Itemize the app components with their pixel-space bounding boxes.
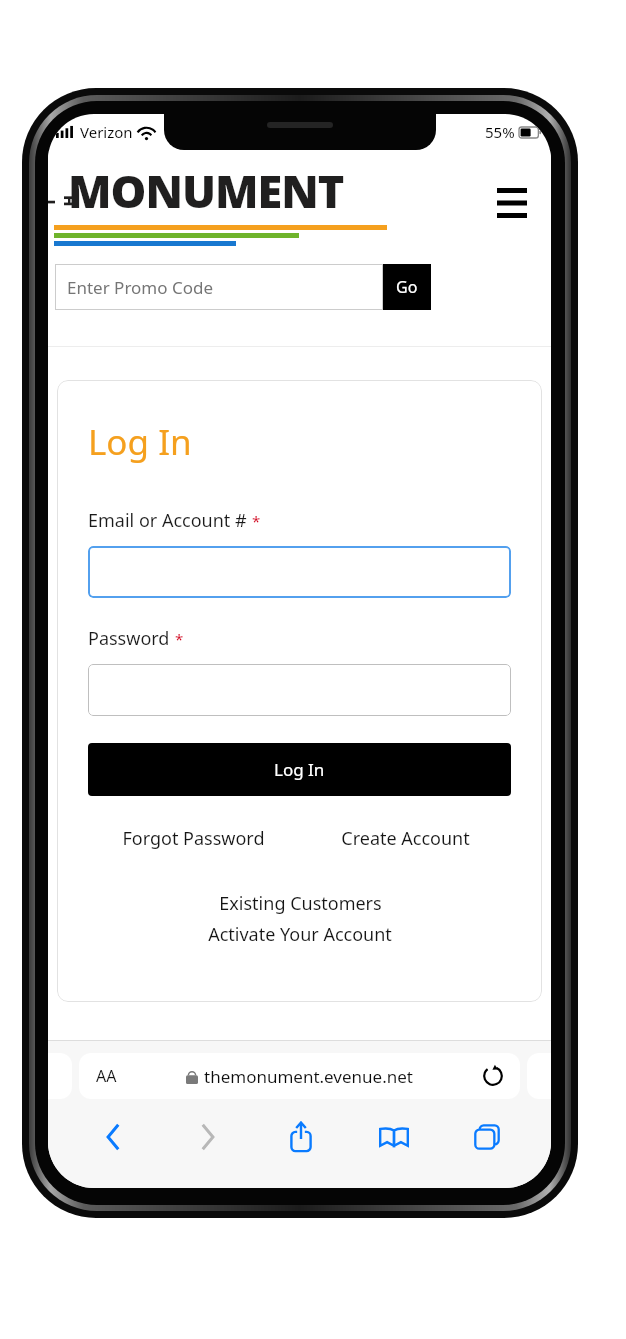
staticText: Existing Customers [219,891,382,916]
button[interactable]: Tabs [440,1110,533,1164]
staticText: Activate Your Account [208,922,392,947]
staticText: Log In [274,758,325,781]
staticText: Verizon [80,122,133,142]
staticText: Log In [88,418,192,466]
staticText: * [175,629,184,649]
button[interactable]: Forgot Password [88,826,299,851]
button[interactable]: Bookmarks [347,1110,440,1164]
button[interactable] [88,664,511,716]
button[interactable]: Menu [489,180,535,226]
staticText: themonument.evenue.net [204,1065,413,1088]
button[interactable]: Go [383,264,431,310]
button[interactable]: Log In [88,743,511,796]
button[interactable]: AA [79,1053,520,1099]
staticText: Create Account [341,826,470,851]
staticText: Forgot Password [122,826,265,851]
button[interactable]: Back [66,1110,160,1164]
button[interactable]: Create Account [299,826,511,851]
button[interactable]: Existing Customers [88,891,511,947]
staticText: MONUMENT [68,160,344,221]
staticText: Email or Account # [88,508,247,533]
staticText: Enter Promo Code [67,276,214,299]
button[interactable] [88,546,511,598]
button[interactable]: Forward [160,1110,254,1164]
staticText: * [252,511,261,531]
button[interactable]: Enter Promo Code [55,264,383,310]
staticText: AA [96,1065,117,1087]
staticText: Password [88,626,170,651]
button[interactable]: Share [254,1110,347,1164]
staticText: 55% [485,122,515,142]
staticText: Go [396,276,418,298]
staticText: THE [48,191,82,206]
button[interactable]: Reload [480,1063,506,1089]
